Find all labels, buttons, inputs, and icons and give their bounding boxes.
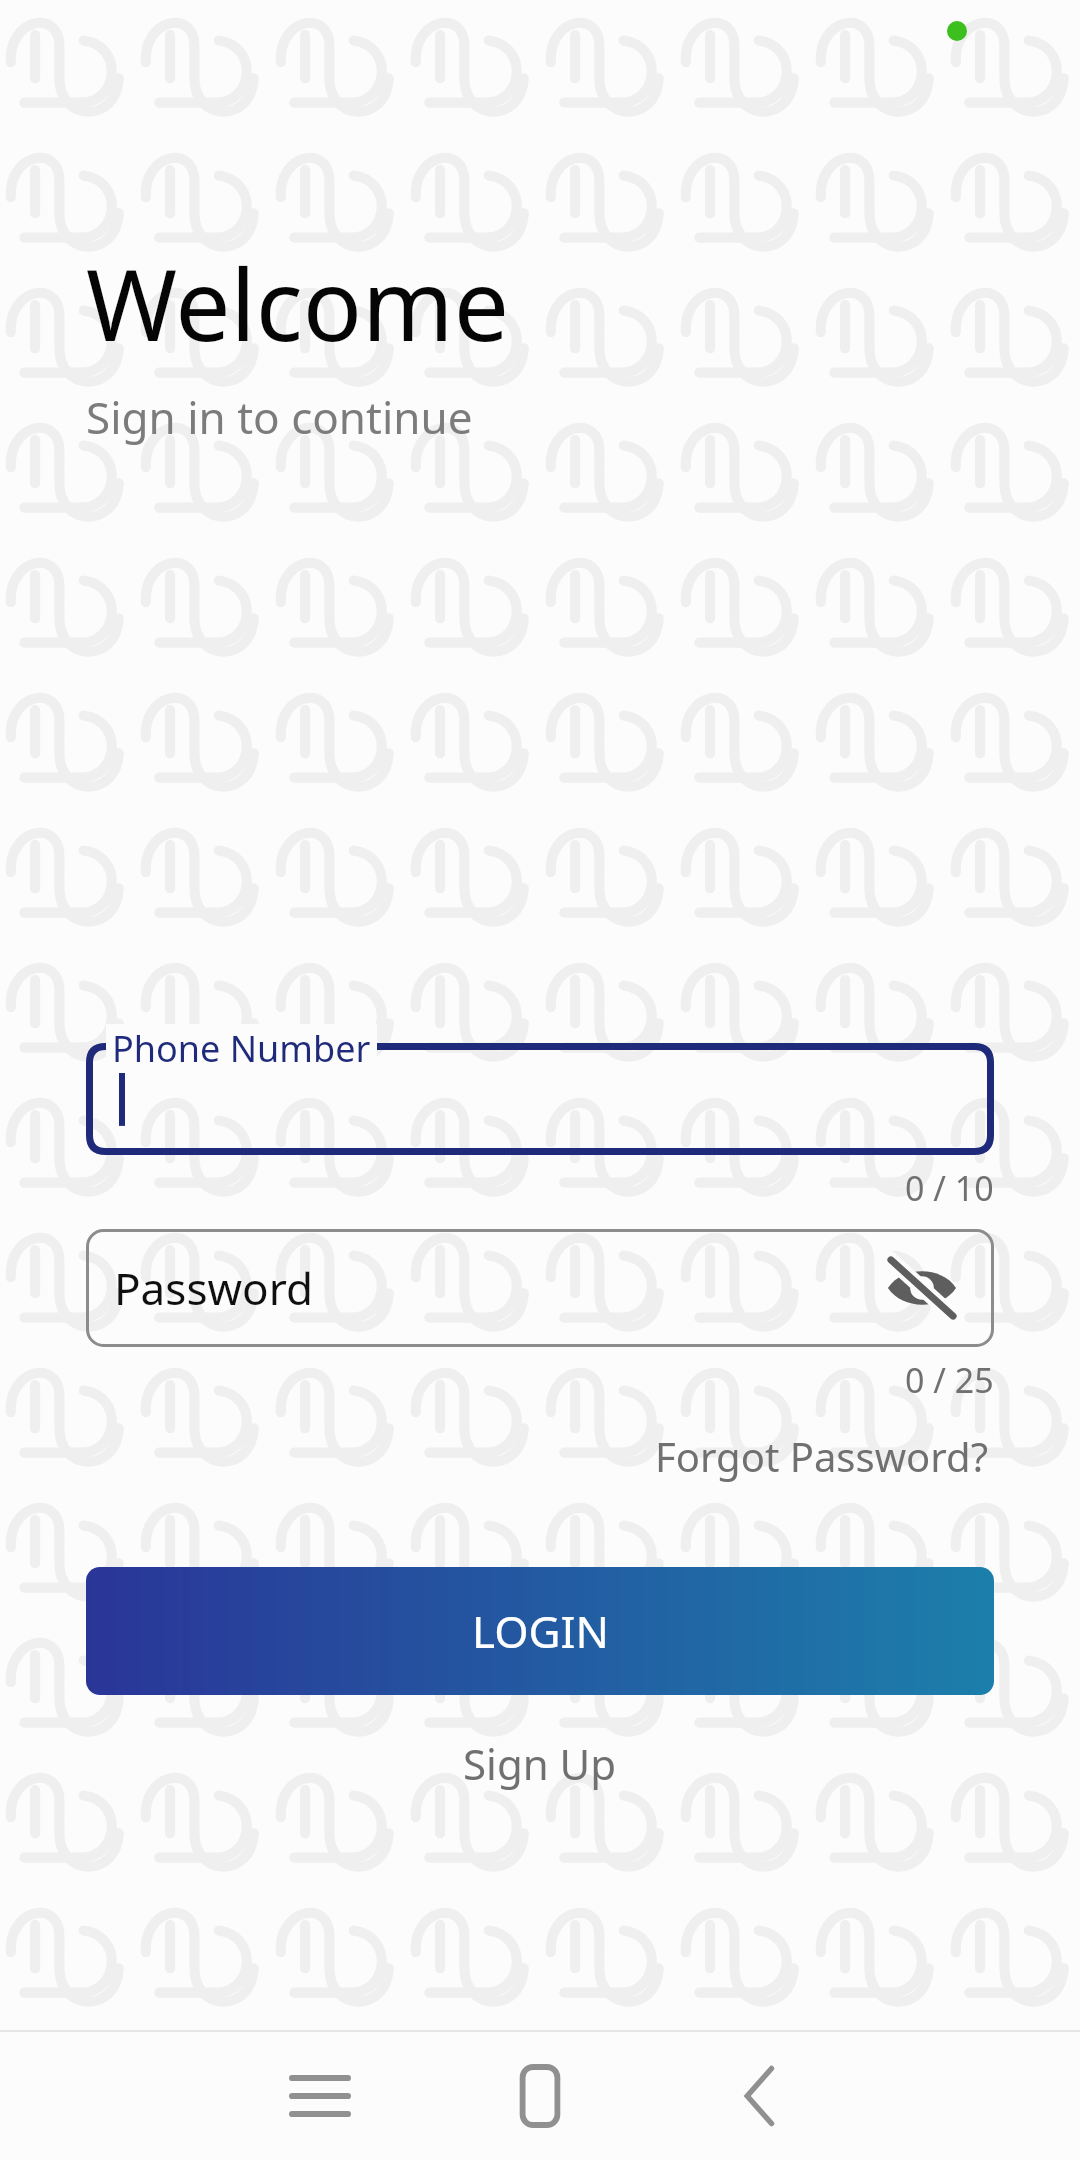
button[interactable]: Back xyxy=(690,2032,830,2160)
button[interactable]: Forgot Password? xyxy=(649,1423,994,1489)
button[interactable]: Phone Number xyxy=(86,1043,994,1155)
button[interactable]: Password xyxy=(86,1229,994,1347)
staticText: 0 / 25 xyxy=(905,1357,994,1403)
button[interactable]: LOGIN xyxy=(86,1567,994,1695)
staticText: Sign in to continue xyxy=(86,387,473,447)
staticText: LOGIN xyxy=(472,1601,609,1661)
staticText: Forgot Password? xyxy=(655,1429,988,1483)
button[interactable]: Recent apps xyxy=(250,2032,390,2160)
staticText: Sign Up xyxy=(463,1735,617,1792)
button[interactable]: Home xyxy=(470,2032,610,2160)
staticText: 0 / 10 xyxy=(905,1165,994,1211)
staticText: Password xyxy=(114,1258,314,1318)
button[interactable]: Toggle password visibility xyxy=(874,1240,970,1336)
staticText: Welcome xyxy=(86,236,509,369)
button[interactable]: Sign Up xyxy=(453,1729,627,1798)
staticText: Phone Number xyxy=(112,1024,371,1073)
